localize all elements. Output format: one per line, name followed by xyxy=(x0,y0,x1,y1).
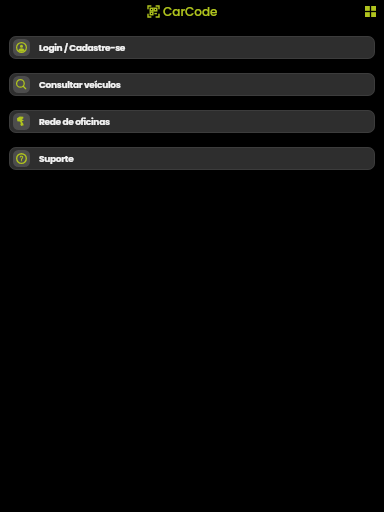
button[interactable]: Menu xyxy=(360,1,380,21)
staticText: CarCode xyxy=(163,3,218,20)
button[interactable]: Consultar veículos xyxy=(9,73,375,96)
staticText: Suporte xyxy=(39,153,74,166)
button[interactable]: Suporte xyxy=(9,147,375,170)
button[interactable]: Login / Cadastre-se xyxy=(9,36,375,59)
staticText: Consultar veículos xyxy=(39,79,121,92)
staticText: Login / Cadastre-se xyxy=(39,42,126,55)
staticText: Rede de oficinas xyxy=(39,116,110,129)
button[interactable]: Rede de oficinas xyxy=(9,110,375,133)
